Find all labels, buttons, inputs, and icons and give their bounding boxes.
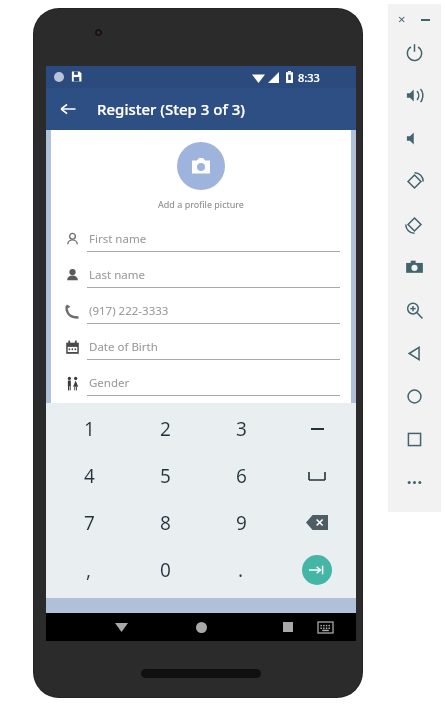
button[interactable]: 4: [52, 453, 126, 498]
button[interactable]: Date of Birth: [61, 334, 341, 366]
button[interactable]: Space: [280, 453, 354, 498]
staticText: 4: [84, 463, 95, 489]
button[interactable]: Recents: [271, 613, 305, 641]
button[interactable]: Power: [398, 36, 431, 69]
staticText: (917) 222-3333: [89, 303, 169, 319]
button[interactable]: 3: [204, 406, 278, 451]
staticText: 6: [236, 463, 247, 489]
staticText: 1: [84, 416, 95, 442]
button[interactable]: Overview: [398, 423, 431, 456]
button[interactable]: 6: [204, 453, 278, 498]
button[interactable]: Back: [52, 93, 84, 125]
staticText: Add a profile picture: [51, 198, 351, 210]
button[interactable]: First name: [61, 226, 341, 258]
button[interactable]: Home: [181, 613, 221, 641]
button[interactable]: 9: [204, 500, 278, 545]
button[interactable]: Home: [398, 380, 431, 413]
button[interactable]: 1: [52, 406, 126, 451]
staticText: 0: [160, 557, 171, 583]
staticText: 5: [160, 463, 171, 489]
button[interactable]: Volume down: [398, 122, 431, 155]
button[interactable]: (917) 222-3333: [61, 298, 341, 330]
button[interactable]: 0: [128, 547, 202, 592]
staticText: 2: [160, 416, 171, 442]
button[interactable]: Gender: [61, 370, 341, 402]
staticText: Register (Step 3 of 3): [97, 99, 245, 119]
staticText: Last name: [89, 267, 145, 283]
button[interactable]: Add a profile picture: [177, 142, 225, 190]
button[interactable]: .: [204, 547, 278, 592]
button[interactable]: 8: [128, 500, 202, 545]
button[interactable]: 5: [128, 453, 202, 498]
staticText: 7: [84, 510, 95, 536]
button[interactable]: Dash: [280, 406, 354, 451]
button[interactable]: ×: [398, 10, 406, 28]
staticText: First name: [89, 231, 147, 247]
staticText: 3: [236, 416, 247, 442]
button[interactable]: Keyboard: [308, 613, 342, 641]
button[interactable]: Last name: [61, 262, 341, 294]
button[interactable]: Zoom: [398, 294, 431, 327]
button[interactable]: More: [398, 466, 431, 499]
button[interactable]: 2: [128, 406, 202, 451]
button[interactable]: Rotate left: [398, 165, 431, 198]
button[interactable]: ,: [52, 547, 126, 592]
staticText: Gender: [89, 375, 130, 391]
button[interactable]: 7: [52, 500, 126, 545]
button[interactable]: Enter: [280, 547, 354, 592]
button[interactable]: Back: [398, 337, 431, 370]
staticText: ,: [86, 557, 92, 583]
button[interactable]: Delete: [280, 500, 354, 545]
button[interactable]: Back: [101, 613, 141, 641]
button[interactable]: Rotate right: [398, 208, 431, 241]
button[interactable]: Volume up: [398, 79, 431, 112]
button[interactable]: Screenshot: [398, 251, 431, 284]
staticText: .: [238, 557, 244, 583]
staticText: 8: [160, 510, 171, 536]
staticText: 8:33: [298, 70, 320, 85]
staticText: Date of Birth: [89, 339, 158, 355]
staticText: 9: [236, 510, 247, 536]
